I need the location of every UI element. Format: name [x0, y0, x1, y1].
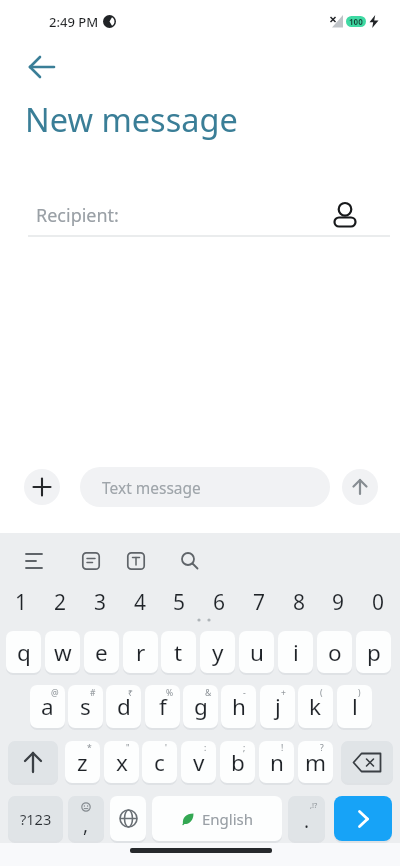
button[interactable]: x: [104, 741, 139, 783]
button[interactable]: ,: [68, 796, 104, 841]
button[interactable]: [26, 53, 58, 81]
staticText: Text message: [102, 477, 201, 498]
staticText: w: [54, 637, 72, 668]
button[interactable]: 8: [279, 583, 319, 621]
button[interactable]: [26, 553, 44, 569]
staticText: c: [154, 747, 165, 778]
staticText: q: [17, 637, 31, 668]
button[interactable]: 6: [199, 583, 239, 621]
staticText: r: [136, 637, 146, 668]
button[interactable]: d: [106, 685, 141, 728]
staticText: 2: [54, 588, 67, 617]
staticText: n: [270, 747, 284, 778]
button[interactable]: p: [356, 631, 391, 673]
button[interactable]: [110, 796, 146, 841]
staticText: l: [352, 691, 358, 722]
staticText: m: [305, 747, 327, 778]
button[interactable]: j: [260, 685, 295, 728]
staticText: ': [165, 742, 167, 754]
staticText: -: [243, 687, 246, 699]
staticText: .: [304, 808, 310, 834]
button[interactable]: e: [84, 631, 119, 673]
staticText: ?: [320, 742, 324, 754]
button[interactable]: Text message: [80, 467, 330, 507]
button[interactable]: b: [220, 741, 255, 783]
staticText: (: [320, 687, 323, 699]
staticText: ₹: [128, 687, 133, 699]
button[interactable]: o: [317, 631, 352, 673]
staticText: 0: [372, 588, 385, 617]
button[interactable]: l: [337, 685, 372, 728]
staticText: b: [231, 747, 245, 778]
button[interactable]: 5: [159, 583, 199, 621]
staticText: i: [293, 637, 299, 668]
button[interactable]: [24, 469, 60, 505]
button[interactable]: 0: [358, 583, 398, 621]
staticText: &: [205, 687, 212, 699]
staticText: English: [202, 809, 254, 829]
button[interactable]: [331, 199, 359, 229]
staticText: 100: [349, 16, 363, 27]
staticText: 3: [94, 588, 107, 617]
button[interactable]: i: [278, 631, 313, 673]
button[interactable]: w: [45, 631, 80, 673]
button[interactable]: t: [161, 631, 196, 673]
staticText: k: [309, 691, 322, 722]
staticText: !: [281, 742, 284, 754]
staticText: f: [159, 691, 167, 722]
staticText: Recipient:: [36, 203, 119, 228]
button[interactable]: 1: [1, 583, 41, 621]
button[interactable]: g: [183, 685, 218, 728]
button[interactable]: ?123: [8, 796, 63, 841]
staticText: ,!?: [310, 800, 318, 810]
button[interactable]: z: [65, 741, 100, 783]
button[interactable]: 3: [80, 583, 120, 621]
staticText: ?123: [20, 809, 52, 829]
button[interactable]: u: [239, 631, 274, 673]
button[interactable]: [181, 552, 199, 570]
staticText: y: [212, 637, 224, 668]
staticText: #: [90, 687, 96, 699]
button[interactable]: [334, 796, 392, 841]
staticText: 5: [173, 588, 186, 617]
button[interactable]: English: [152, 796, 282, 841]
button[interactable]: m: [298, 741, 333, 783]
button[interactable]: h: [221, 685, 256, 728]
button[interactable]: q: [6, 631, 41, 673]
button[interactable]: [342, 469, 378, 505]
button[interactable]: n: [259, 741, 294, 783]
button[interactable]: y: [200, 631, 235, 673]
staticText: +: [281, 687, 286, 699]
button[interactable]: [341, 741, 393, 783]
button[interactable]: 9: [318, 583, 358, 621]
staticText: ;: [243, 742, 246, 754]
button[interactable]: [127, 552, 145, 570]
button[interactable]: c: [142, 741, 177, 783]
button[interactable]: [82, 552, 100, 570]
staticText: *: [87, 742, 92, 754]
button[interactable]: r: [123, 631, 158, 673]
staticText: t: [174, 637, 183, 668]
staticText: a: [41, 691, 54, 722]
staticText: ,: [83, 812, 89, 838]
button[interactable]: s: [68, 685, 103, 728]
button[interactable]: a: [30, 685, 65, 728]
button[interactable]: 7: [239, 583, 279, 621]
button[interactable]: [8, 741, 58, 783]
staticText: 2:49 PM: [49, 13, 99, 31]
staticText: h: [232, 691, 246, 722]
button[interactable]: 4: [120, 583, 160, 621]
button[interactable]: 2: [40, 583, 80, 621]
button[interactable]: f: [145, 685, 180, 728]
staticText: d: [117, 691, 131, 722]
staticText: o: [328, 637, 342, 668]
staticText: x: [116, 747, 128, 778]
staticText: New message: [25, 97, 238, 141]
button[interactable]: ,!?: [288, 796, 325, 841]
staticText: 1: [15, 588, 28, 617]
button[interactable]: k: [298, 685, 333, 728]
staticText: s: [80, 691, 91, 722]
staticText: e: [95, 637, 108, 668]
staticText: g: [194, 691, 208, 722]
button[interactable]: v: [181, 741, 216, 783]
